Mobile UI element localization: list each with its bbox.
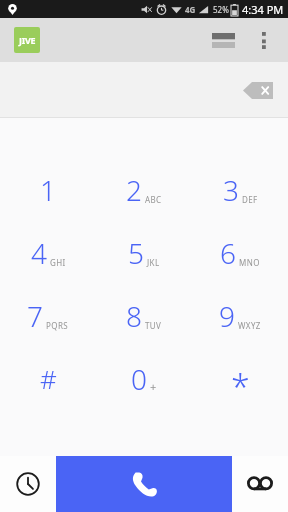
staticText: JIVE — [19, 34, 36, 46]
button[interactable]: Voicemail — [240, 464, 280, 504]
staticText: 4G — [185, 4, 196, 15]
staticText: 9 — [219, 297, 235, 335]
staticText: 6 — [220, 234, 236, 272]
staticText: + — [150, 379, 157, 394]
staticText: 1 — [40, 171, 56, 209]
button[interactable]: 1 — [0, 158, 96, 221]
button[interactable]: 3 — [192, 158, 288, 221]
staticText: JKL — [147, 257, 160, 268]
staticText: TUV — [145, 320, 162, 331]
staticText: 0 — [131, 360, 147, 398]
button[interactable]: Jive app — [14, 27, 40, 53]
button[interactable]: More options — [250, 23, 278, 57]
staticText: 52% — [213, 4, 229, 15]
staticText: 7 — [27, 297, 43, 335]
staticText: 2 — [126, 171, 142, 209]
staticText: WXYZ — [238, 320, 261, 331]
staticText: PQRS — [46, 320, 69, 331]
button[interactable]: 8 — [96, 284, 192, 347]
button[interactable]: 7 — [0, 284, 96, 347]
staticText: * — [231, 364, 250, 394]
staticText: DEF — [242, 194, 258, 205]
button[interactable]: Backspace — [236, 70, 280, 110]
button[interactable]: 0 — [96, 347, 192, 410]
button[interactable]: 2 — [96, 158, 192, 221]
staticText: GHI — [50, 257, 66, 268]
staticText: MNO — [239, 257, 260, 268]
button[interactable]: 4 — [0, 221, 96, 284]
staticText: 8 — [126, 297, 142, 335]
button[interactable]: Recent calls — [8, 464, 48, 504]
button[interactable]: 6 — [192, 221, 288, 284]
staticText: 4:34 PM — [242, 2, 284, 17]
staticText: ABC — [145, 194, 162, 205]
staticText: 4 — [31, 234, 47, 272]
button[interactable]: # — [0, 347, 96, 410]
staticText: 5 — [128, 234, 144, 272]
staticText: 3 — [223, 171, 239, 209]
button[interactable]: * — [192, 347, 288, 410]
button[interactable]: 9 — [192, 284, 288, 347]
button[interactable]: 5 — [96, 221, 192, 284]
staticText: # — [40, 361, 57, 396]
button[interactable]: Call — [56, 456, 232, 512]
button[interactable]: Call log tabs — [208, 27, 238, 53]
